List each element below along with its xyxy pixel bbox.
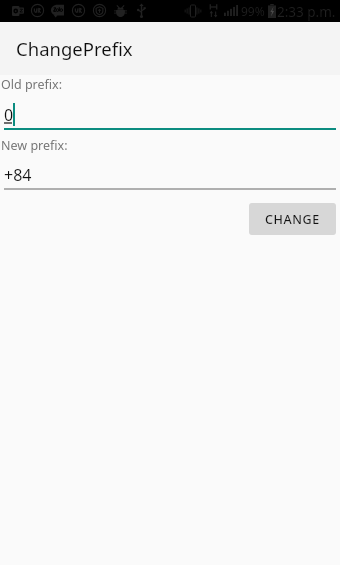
staticText: 0: [4, 104, 14, 126]
staticText: ChangePrefix: [16, 36, 133, 61]
button[interactable]: Old prefix:: [0, 76, 340, 131]
staticText: +84: [4, 164, 32, 186]
staticText: 99%: [241, 3, 265, 19]
staticText: 2:33 p.m.: [277, 3, 336, 21]
staticText: CHANGE: [265, 211, 320, 228]
button[interactable]: New prefix:: [0, 137, 340, 191]
staticText: New prefix:: [1, 137, 68, 154]
staticText: Old prefix:: [1, 76, 63, 93]
button[interactable]: CHANGE: [249, 203, 336, 235]
